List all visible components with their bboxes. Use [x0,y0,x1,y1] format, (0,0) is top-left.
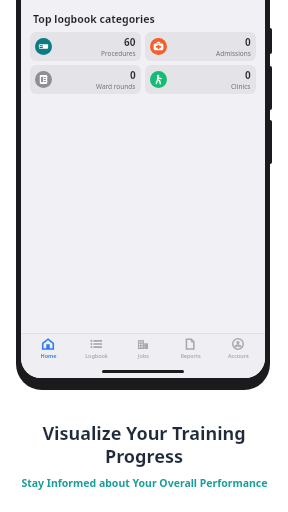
button[interactable]: Home [28,338,68,378]
staticText: 60 [124,35,136,49]
button[interactable]: Account [218,338,258,378]
button[interactable]: 0 [145,65,256,94]
button[interactable]: Logbook [76,338,116,378]
staticText: Stay Informed about Your Overall Perform… [21,476,268,490]
staticText: Home [40,352,57,359]
staticText: 0 [245,68,251,82]
button[interactable]: 0 [145,32,256,61]
staticText: Reports [180,352,201,359]
staticText: Clinics [231,82,251,91]
staticText: Visualize Your Training Progress [18,421,270,468]
button[interactable]: 60 [30,32,141,61]
staticText: 0 [130,68,136,82]
staticText: Admissions [216,49,251,58]
staticText: Procedures [101,49,136,58]
staticText: 0 [245,35,251,49]
button[interactable]: Reports [170,338,210,378]
button[interactable]: 0 [30,65,141,94]
staticText: Top logbook categories [33,12,155,26]
button[interactable]: Jobs [123,338,163,378]
staticText: Logbook [85,352,108,359]
staticText: Account [228,352,249,359]
staticText: Ward rounds [96,82,136,91]
staticText: Jobs [138,352,149,359]
